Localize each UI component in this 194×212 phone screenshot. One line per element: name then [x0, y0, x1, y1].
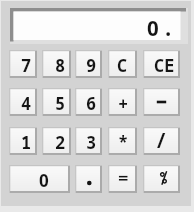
button[interactable]: + — [108, 88, 137, 116]
staticText: 0 — [147, 14, 159, 42]
button[interactable]: 2 — [42, 127, 71, 155]
staticText: C — [117, 54, 128, 77]
staticText: / — [155, 126, 168, 154]
button[interactable]: * — [108, 127, 137, 155]
button[interactable]: 3 — [75, 127, 102, 155]
button[interactable] — [143, 165, 180, 193]
button[interactable]: 0 — [9, 165, 70, 193]
staticText: 5 — [55, 92, 66, 115]
staticText: + — [118, 92, 129, 115]
button[interactable] — [143, 88, 180, 116]
staticText: 8 — [55, 54, 66, 77]
button[interactable]: 7 — [9, 50, 37, 78]
button[interactable]: 4 — [9, 88, 37, 116]
staticText: 9 — [86, 54, 97, 77]
button[interactable]: 8 — [42, 50, 71, 78]
button[interactable]: CE — [143, 50, 180, 78]
staticText: 6 — [86, 92, 97, 115]
staticText: CE — [154, 54, 175, 77]
staticText: 0 — [39, 169, 49, 192]
staticText: . — [162, 14, 175, 42]
button[interactable]: C — [108, 50, 137, 78]
staticText: * — [118, 131, 129, 154]
staticText: 7 — [21, 54, 32, 77]
button[interactable]: / — [143, 127, 180, 155]
button[interactable] — [75, 165, 102, 193]
staticText: 3 — [86, 131, 97, 154]
staticText: 2 — [55, 131, 66, 154]
button[interactable]: 6 — [75, 88, 102, 116]
button[interactable]: 5 — [42, 88, 71, 116]
staticText: 4 — [21, 92, 32, 115]
button[interactable]: 1 — [9, 127, 37, 155]
button[interactable] — [108, 165, 137, 193]
staticText: 1 — [21, 131, 32, 154]
button[interactable]: 9 — [75, 50, 102, 78]
